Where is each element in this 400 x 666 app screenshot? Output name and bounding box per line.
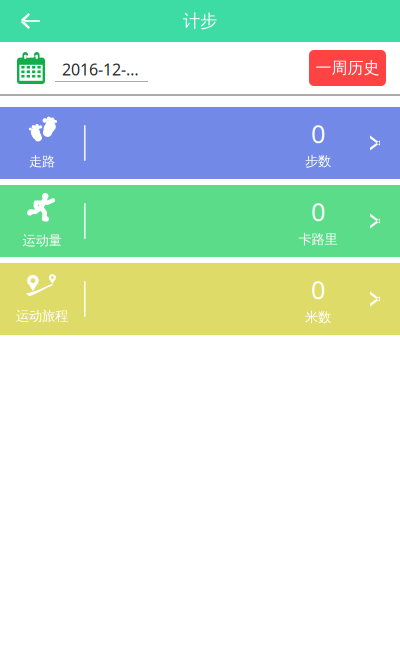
button[interactable]: 运动量 — [0, 185, 400, 257]
staticText: 0 — [311, 116, 325, 150]
staticText: 0 — [311, 194, 325, 228]
staticText: 计步 — [183, 10, 217, 32]
button[interactable]: 运动旅程 — [0, 263, 400, 335]
staticText: 卡路里 — [298, 231, 337, 247]
staticText: 走路 — [29, 153, 55, 170]
staticText: 运动旅程 — [16, 308, 68, 324]
staticText: 0 — [311, 272, 325, 306]
button[interactable]: 一周历史 — [309, 50, 386, 86]
staticText: 米数 — [305, 309, 331, 325]
staticText: 一周历史 — [315, 58, 379, 78]
staticText: 运动量 — [22, 232, 61, 249]
button[interactable]: Back — [0, 0, 52, 41]
button[interactable]: 走路 — [0, 107, 400, 179]
staticText: 步数 — [305, 153, 331, 169]
staticText: 2016-12-01 — [62, 59, 140, 80]
